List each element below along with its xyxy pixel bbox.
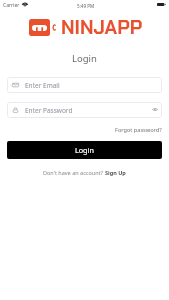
button[interactable]: Login [7,141,162,159]
staticText: Login [72,52,97,65]
staticText: NINJAPP [61,15,143,40]
staticText: Carrier [3,2,20,9]
staticText: Sign Up [105,169,126,176]
button[interactable]: Enter Password [7,102,162,118]
button[interactable]: Show password [152,107,158,112]
staticText: Enter Email [25,81,60,90]
staticText: Enter Password [25,106,73,115]
staticText: Forgot password? [115,126,162,134]
staticText: Login [75,145,94,155]
staticText: Don't have an account? [43,169,105,176]
button[interactable]: Sign Up [105,169,126,176]
button[interactable]: Enter Email [7,77,162,93]
staticText: 5:49 PM [77,3,95,9]
button[interactable]: Forgot password? [115,126,162,134]
